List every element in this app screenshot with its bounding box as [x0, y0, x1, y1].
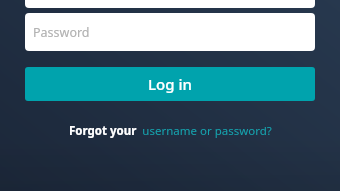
staticText: Log in	[148, 74, 192, 94]
button[interactable]: Password	[25, 13, 315, 51]
staticText: Forgot your username or password?	[69, 123, 272, 139]
button[interactable]: Log in	[25, 67, 315, 101]
button[interactable]: Forgot your username or password	[66, 120, 275, 142]
button[interactable]: Username field	[25, 0, 315, 8]
staticText: Password	[33, 24, 90, 41]
